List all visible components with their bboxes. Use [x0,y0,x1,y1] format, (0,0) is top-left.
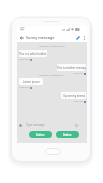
staticText: Lorem ipsum [23,80,40,84]
button[interactable]: Upcoming drama [61,92,86,99]
staticText: Button [36,133,45,137]
staticText: Button [63,133,72,137]
staticText: This is another message [57,66,86,70]
button[interactable]: Attach file [17,121,24,129]
button[interactable]: Button [56,131,79,138]
staticText: 10:30 AM [19,58,29,61]
staticText: This is a white bubble [19,52,47,56]
button[interactable]: Lorem ipsum [19,78,43,85]
button[interactable]: Button [29,131,52,138]
button[interactable]: This is another message [57,64,86,71]
staticText: 10:30 AM [73,100,83,103]
staticText: Type message [26,123,45,127]
staticText: Sunny message [26,35,55,40]
staticText: Upcoming drama [63,94,85,98]
staticText: Monday, November 21 [17,73,87,76]
staticText: 10:30 AM [73,72,83,75]
button[interactable]: This is a white bubble [19,50,47,57]
staticText: 10:30 AM [19,86,29,89]
staticText: Monday, November 20 [17,44,87,47]
button[interactable]: Back [17,33,26,42]
button[interactable]: Emoji [73,121,80,129]
button[interactable]: More options [81,33,87,42]
button[interactable]: Call [74,33,81,42]
